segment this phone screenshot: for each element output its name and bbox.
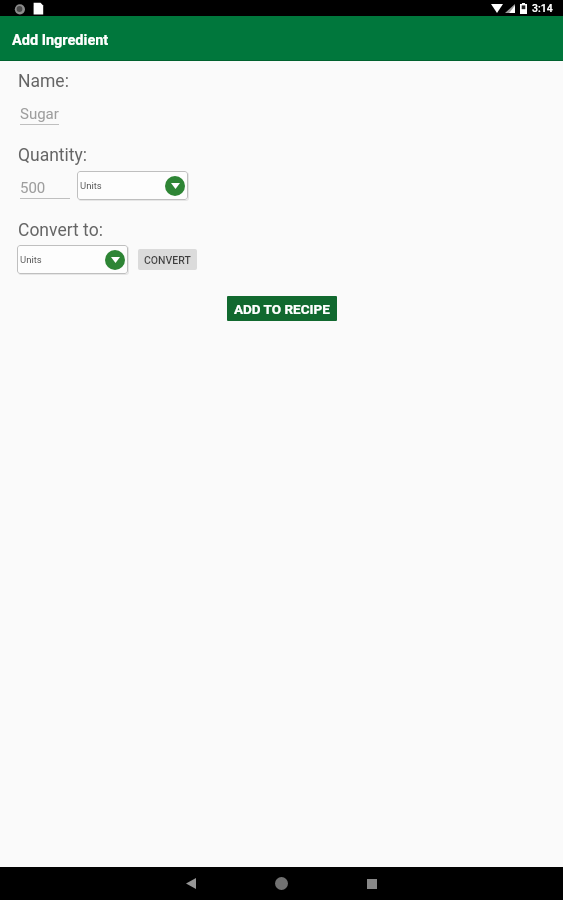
button[interactable]: 500 — [20, 179, 70, 199]
button[interactable]: Back — [175, 867, 207, 900]
staticText: 500 — [20, 179, 46, 197]
staticText: Units — [80, 180, 102, 191]
staticText: ADD TO RECIPE — [234, 301, 330, 317]
button[interactable]: ADD TO RECIPE — [227, 296, 337, 321]
staticText: Quantity: — [18, 145, 88, 166]
staticText: 3:14 — [532, 2, 553, 14]
staticText: CONVERT — [144, 254, 191, 266]
button[interactable]: Sugar — [20, 105, 59, 125]
button[interactable]: Units — [17, 245, 128, 274]
staticText: Convert to: — [18, 220, 103, 241]
button[interactable]: Units — [77, 171, 188, 200]
staticText: Name: — [18, 71, 69, 92]
button[interactable]: Home — [265, 867, 297, 900]
button[interactable]: CONVERT — [138, 249, 197, 270]
button[interactable]: Recent apps — [356, 867, 388, 900]
staticText: Units — [20, 254, 42, 265]
staticText: Add Ingredient — [12, 32, 109, 49]
staticText: Sugar — [20, 105, 59, 123]
